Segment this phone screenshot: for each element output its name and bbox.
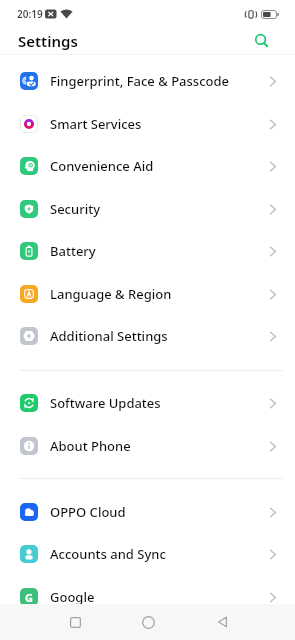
button[interactable]: G bbox=[0, 576, 295, 618]
button[interactable] bbox=[128, 604, 168, 640]
button[interactable]: Language & Region bbox=[0, 273, 295, 315]
button[interactable]: Fingerprint, Face & Passcode bbox=[0, 60, 295, 102]
staticText: Settings bbox=[18, 31, 78, 51]
staticText: Security bbox=[50, 200, 100, 218]
button[interactable]: Security bbox=[0, 188, 295, 230]
button[interactable] bbox=[55, 604, 95, 640]
staticText: Convenience Aid bbox=[50, 157, 154, 175]
button[interactable]: OPPO Cloud bbox=[0, 491, 295, 533]
staticText: G bbox=[25, 590, 33, 605]
button[interactable]: Software Updates bbox=[0, 382, 295, 424]
button[interactable] bbox=[253, 32, 271, 50]
staticText: Google bbox=[50, 588, 95, 606]
button[interactable]: Battery bbox=[0, 230, 295, 272]
staticText: Fingerprint, Face & Passcode bbox=[50, 72, 230, 90]
staticText: Software Updates bbox=[50, 394, 161, 412]
staticText: Accounts and Sync bbox=[50, 545, 166, 563]
staticText: Smart Services bbox=[50, 115, 142, 133]
button[interactable]: Smart Services bbox=[0, 103, 295, 145]
staticText: OPPO Cloud bbox=[50, 503, 126, 521]
staticText: Additional Settings bbox=[50, 327, 168, 345]
button[interactable]: Additional Settings bbox=[0, 315, 295, 357]
button[interactable]: About Phone bbox=[0, 425, 295, 467]
staticText: 20:19 bbox=[17, 7, 43, 21]
staticText: Language & Region bbox=[50, 285, 172, 303]
staticText: About Phone bbox=[50, 437, 131, 455]
button[interactable] bbox=[202, 604, 242, 640]
button[interactable]: Accounts and Sync bbox=[0, 533, 295, 575]
staticText: Battery bbox=[50, 242, 96, 260]
button[interactable]: Convenience Aid bbox=[0, 145, 295, 187]
